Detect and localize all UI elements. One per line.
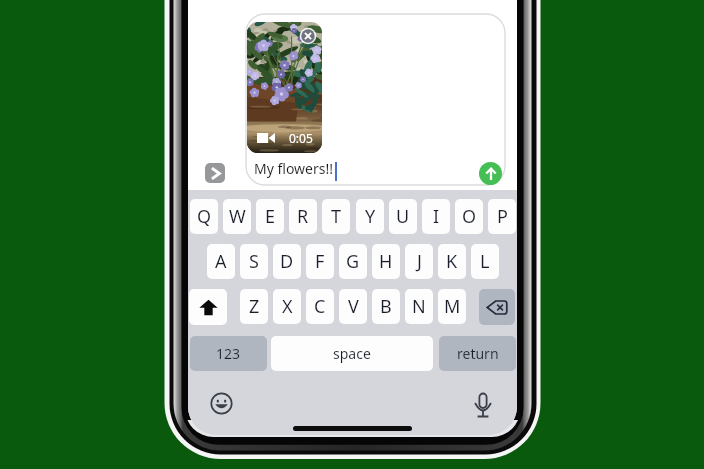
staticText: I bbox=[433, 204, 440, 229]
button[interactable]: J bbox=[405, 244, 433, 279]
button[interactable]: E bbox=[256, 199, 284, 234]
button[interactable]: A bbox=[207, 244, 235, 279]
staticText: E bbox=[265, 204, 276, 229]
staticText: M bbox=[444, 294, 461, 319]
button[interactable]: space bbox=[271, 336, 433, 371]
staticText: D bbox=[280, 249, 294, 274]
staticText: P bbox=[497, 204, 508, 229]
button[interactable]: Q bbox=[190, 199, 218, 234]
button[interactable]: Z bbox=[240, 289, 268, 324]
button[interactable]: W bbox=[223, 199, 251, 234]
staticText: Z bbox=[249, 294, 260, 319]
button[interactable]: B bbox=[372, 289, 400, 324]
button[interactable]: Remove attachment bbox=[299, 27, 317, 45]
button[interactable]: H bbox=[372, 244, 400, 279]
staticText: T bbox=[331, 204, 342, 229]
button[interactable]: Send bbox=[479, 162, 502, 185]
button[interactable]: Dictate bbox=[472, 392, 493, 418]
staticText: Q bbox=[197, 204, 212, 229]
button[interactable]: X bbox=[273, 289, 301, 324]
staticText: Y bbox=[365, 204, 376, 229]
staticText: J bbox=[417, 249, 422, 274]
staticText: space bbox=[333, 344, 371, 363]
button[interactable]: G bbox=[339, 244, 367, 279]
staticText: 123 bbox=[216, 344, 241, 363]
staticText: X bbox=[282, 294, 293, 319]
button[interactable]: R bbox=[289, 199, 317, 234]
staticText: C bbox=[314, 294, 326, 319]
staticText: R bbox=[297, 204, 309, 229]
staticText: F bbox=[315, 249, 325, 274]
button[interactable]: Y bbox=[356, 199, 384, 234]
button[interactable]: P bbox=[488, 199, 516, 234]
staticText: H bbox=[379, 249, 393, 274]
staticText: 0:05 bbox=[289, 130, 313, 146]
staticText: N bbox=[412, 294, 426, 319]
staticText: S bbox=[249, 249, 259, 274]
staticText: K bbox=[446, 249, 458, 274]
button[interactable]: C bbox=[306, 289, 334, 324]
button[interactable]: T bbox=[322, 199, 350, 234]
button[interactable]: F bbox=[306, 244, 334, 279]
staticText: U bbox=[396, 204, 410, 229]
button[interactable]: 123 bbox=[190, 336, 267, 371]
staticText: A bbox=[215, 249, 227, 274]
staticText: B bbox=[380, 294, 392, 319]
button[interactable]: Shift bbox=[189, 289, 227, 325]
button[interactable]: N bbox=[405, 289, 433, 324]
staticText: return bbox=[457, 344, 499, 363]
button[interactable]: V bbox=[339, 289, 367, 324]
button[interactable]: L bbox=[471, 244, 499, 279]
staticText: O bbox=[462, 204, 477, 229]
button[interactable]: Backspace bbox=[479, 289, 515, 325]
button[interactable]: Emoji bbox=[209, 391, 234, 416]
button[interactable]: Show apps bbox=[205, 163, 225, 183]
button[interactable]: M bbox=[438, 289, 466, 324]
button[interactable]: D bbox=[273, 244, 301, 279]
button[interactable]: return bbox=[439, 336, 516, 371]
button[interactable]: O bbox=[455, 199, 483, 234]
button[interactable]: U bbox=[389, 199, 417, 234]
button[interactable]: S bbox=[240, 244, 268, 279]
button[interactable]: K bbox=[438, 244, 466, 279]
button[interactable]: I bbox=[422, 199, 450, 234]
staticText: G bbox=[346, 249, 360, 274]
staticText: My flowers!! bbox=[254, 159, 334, 178]
staticText: W bbox=[229, 204, 246, 229]
staticText: V bbox=[348, 294, 359, 319]
staticText: L bbox=[480, 249, 490, 274]
